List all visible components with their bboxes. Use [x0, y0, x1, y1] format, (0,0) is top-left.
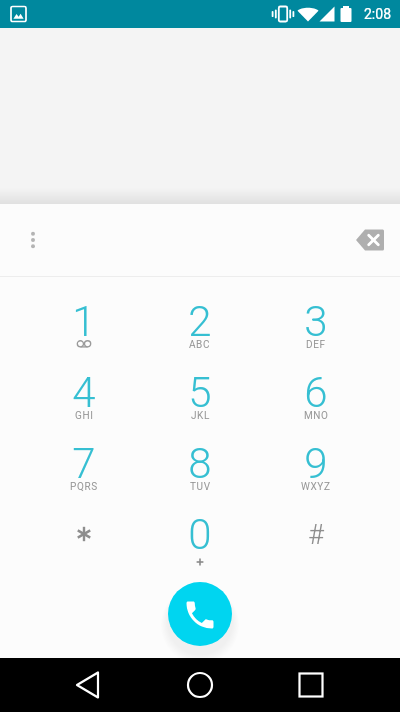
staticText: 8 [188, 439, 212, 488]
staticText: 2 [188, 297, 212, 346]
button[interactable]: 1 [26, 290, 142, 361]
button[interactable]: 9 [258, 432, 374, 503]
button[interactable]: # [258, 503, 374, 574]
button[interactable]: 5 [142, 361, 258, 432]
button[interactable]: Recents [287, 661, 335, 709]
button[interactable]: More options [12, 219, 54, 261]
staticText: WXYZ [301, 481, 331, 493]
staticText: 7 [72, 439, 96, 488]
staticText: DEF [306, 339, 326, 351]
button[interactable]: 8 [142, 432, 258, 503]
button[interactable] [26, 503, 142, 574]
button[interactable]: Back [64, 661, 112, 709]
staticText: MNO [304, 410, 329, 422]
staticText: PQRS [70, 481, 98, 493]
staticText: 2:08 [364, 6, 391, 22]
staticText: 6 [304, 368, 328, 417]
button[interactable]: Home [176, 661, 224, 709]
staticText: JKL [191, 410, 210, 422]
button[interactable]: 4 [26, 361, 142, 432]
button[interactable]: 6 [258, 361, 374, 432]
button[interactable]: 0 [142, 503, 258, 574]
staticText: # [308, 519, 324, 551]
staticText: ABC [189, 339, 211, 351]
button[interactable]: Backspace [348, 219, 390, 261]
staticText: 5 [188, 368, 212, 417]
button[interactable]: 3 [258, 290, 374, 361]
staticText: 1 [72, 297, 96, 346]
button[interactable]: Call [168, 582, 232, 646]
button[interactable]: 7 [26, 432, 142, 503]
button[interactable]: 2 [142, 290, 258, 361]
staticText: 0 [188, 510, 212, 559]
staticText: 4 [72, 368, 96, 417]
staticText: 3 [304, 297, 328, 346]
staticText: 9 [304, 439, 328, 488]
staticText: TUV [190, 481, 211, 493]
staticText: GHI [75, 410, 94, 422]
